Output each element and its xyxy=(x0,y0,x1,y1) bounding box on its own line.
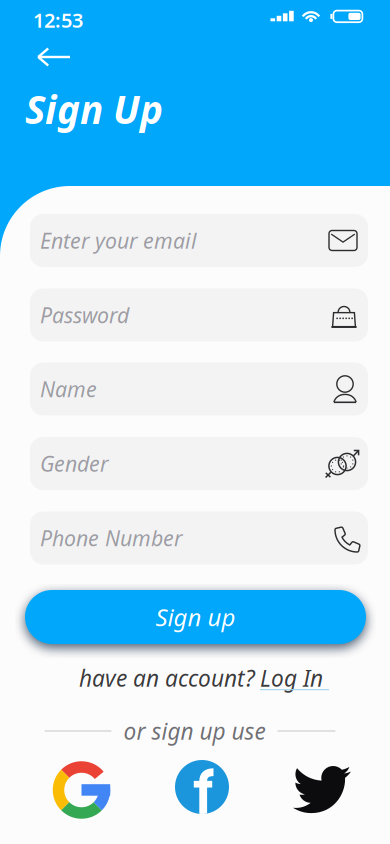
staticText: Log In xyxy=(260,663,329,693)
button[interactable]: Sign up with Google xyxy=(52,761,110,819)
staticText: 12:53 xyxy=(33,7,83,33)
staticText: Sign Up xyxy=(25,83,163,135)
button[interactable]: Back xyxy=(37,47,71,66)
button[interactable]: Gender xyxy=(30,437,368,490)
button[interactable]: Sign up xyxy=(25,590,366,644)
staticText: Enter your email xyxy=(40,226,197,255)
staticText: Sign up xyxy=(155,601,235,633)
staticText: have an account? xyxy=(79,663,255,693)
staticText: or sign up use xyxy=(123,716,265,746)
button[interactable]: Password xyxy=(30,288,368,341)
staticText: Password xyxy=(40,301,129,329)
button[interactable]: Enter your email xyxy=(30,214,368,267)
button[interactable]: Name xyxy=(30,362,368,415)
button[interactable]: have an account? xyxy=(79,663,329,693)
button[interactable]: Sign up with Facebook xyxy=(175,760,229,814)
button[interactable]: Phone Number xyxy=(30,511,368,564)
button[interactable]: Sign up with Twitter xyxy=(293,766,351,814)
staticText: Name xyxy=(40,375,97,403)
staticText: Gender xyxy=(40,449,108,478)
staticText: Phone Number xyxy=(40,524,182,552)
